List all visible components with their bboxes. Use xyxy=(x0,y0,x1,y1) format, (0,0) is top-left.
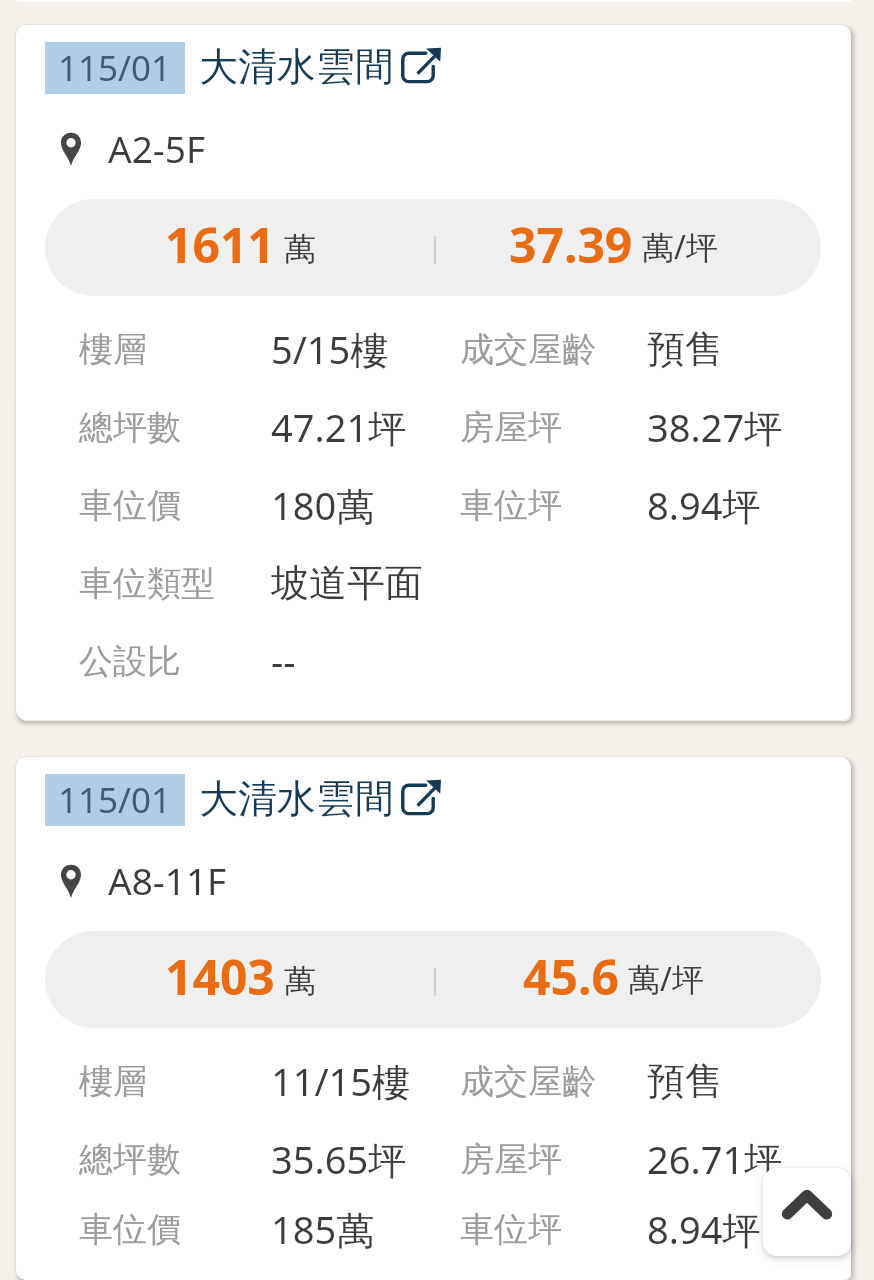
staticText: 1611 xyxy=(165,212,275,277)
staticText: -- xyxy=(271,635,296,687)
staticText: 1403 xyxy=(165,944,275,1009)
staticText: 180萬 xyxy=(271,479,375,531)
staticText: 樓層 xyxy=(79,1060,147,1103)
staticText: 萬 xyxy=(284,229,316,269)
staticText: 35.65坪 xyxy=(271,1133,407,1185)
staticText: 萬/坪 xyxy=(628,957,704,1001)
staticText: 8.94坪 xyxy=(647,479,761,531)
staticText: 總坪數 xyxy=(79,1138,181,1181)
staticText: 房屋坪 xyxy=(460,1138,562,1181)
staticText: 45.6 xyxy=(523,944,619,1009)
staticText: 115/01 xyxy=(58,776,172,824)
staticText: 185萬 xyxy=(271,1203,375,1255)
staticText: 5/15樓 xyxy=(271,323,389,375)
staticText: 成交屋齡 xyxy=(460,1060,596,1103)
staticText: A8-11F xyxy=(108,855,227,905)
staticText: 房屋坪 xyxy=(460,406,562,449)
staticText: 公設比 xyxy=(79,640,181,683)
staticText: 37.39 xyxy=(509,212,633,277)
staticText: 車位坪 xyxy=(460,1208,562,1251)
staticText: 成交屋齡 xyxy=(460,328,596,371)
staticText: 車位價 xyxy=(79,1208,181,1251)
staticText: 預售 xyxy=(647,1057,723,1105)
staticText: 樓層 xyxy=(79,328,147,371)
staticText: 車位價 xyxy=(79,484,181,527)
staticText: 萬/坪 xyxy=(642,225,718,269)
button[interactable]: 115/01 xyxy=(16,757,851,1280)
staticText: 預售 xyxy=(647,325,723,373)
staticText: 總坪數 xyxy=(79,406,181,449)
staticText: 車位坪 xyxy=(460,484,562,527)
staticText: 8.94坪 xyxy=(647,1203,761,1255)
staticText: 萬 xyxy=(284,961,316,1001)
staticText: 大清水雲間 xyxy=(199,42,394,91)
staticText: 115/01 xyxy=(58,44,172,92)
button[interactable]: Scroll to top xyxy=(763,1168,851,1256)
staticText: 車位類型 xyxy=(79,562,215,605)
staticText: 26.71坪 xyxy=(647,1133,783,1185)
staticText: 大清水雲間 xyxy=(199,774,394,823)
staticText: 坡道平面 xyxy=(271,559,423,607)
staticText: 47.21坪 xyxy=(271,401,407,453)
staticText: 38.27坪 xyxy=(647,401,783,453)
staticText: 11/15樓 xyxy=(271,1055,411,1107)
button[interactable]: 115/01 xyxy=(16,25,851,720)
staticText: A2-5F xyxy=(108,123,206,173)
